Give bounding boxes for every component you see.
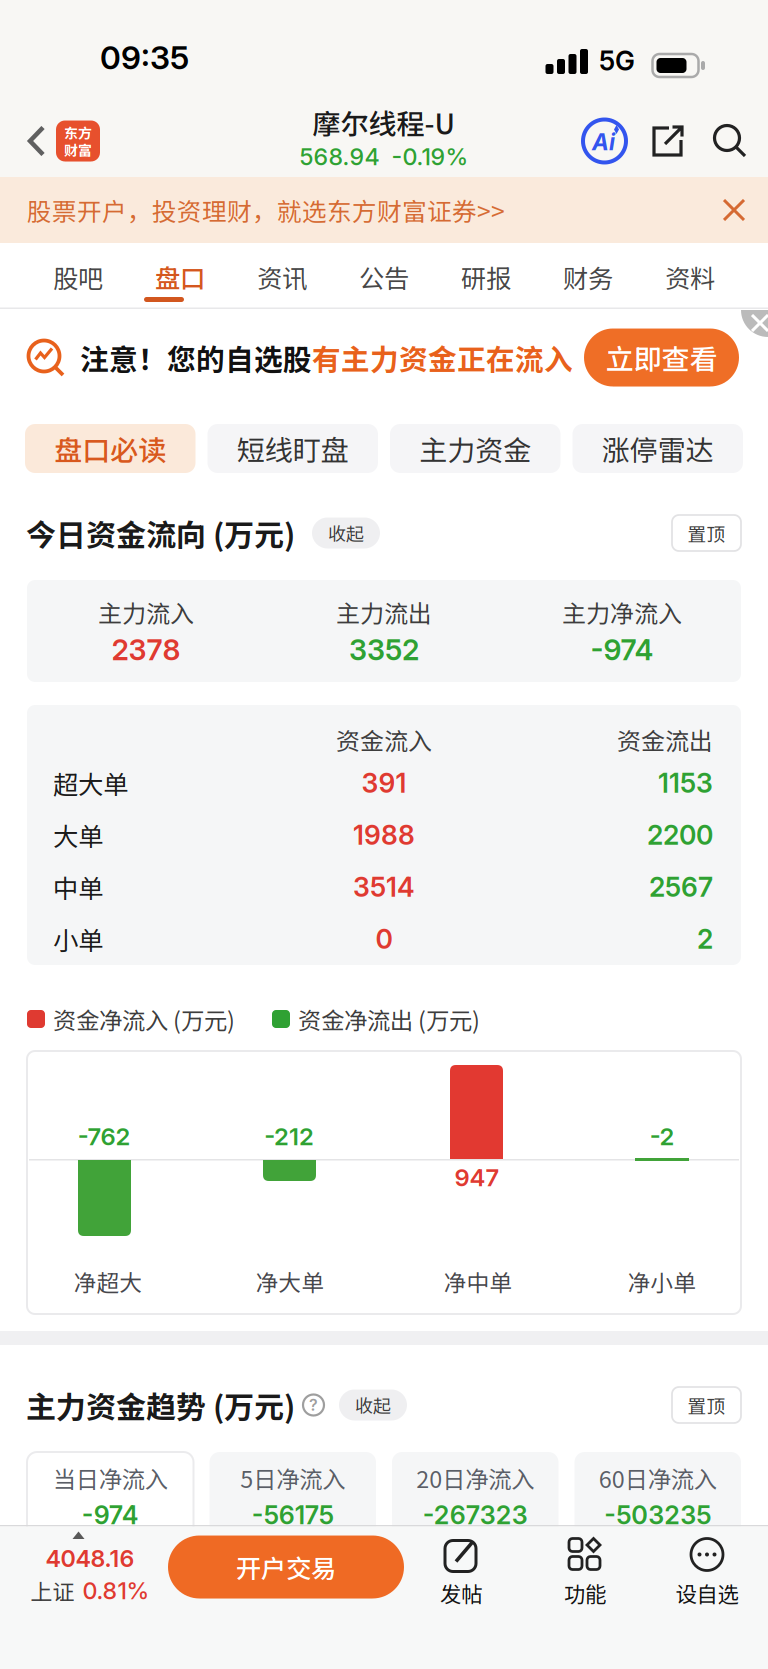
staticText: 股吧	[53, 259, 103, 295]
staticText: 置顶	[687, 1391, 725, 1418]
staticText: 净大单	[255, 1265, 324, 1298]
staticText: 2200	[647, 819, 713, 851]
staticText: 财务	[563, 259, 613, 295]
button[interactable]: 收起	[339, 1389, 407, 1420]
staticText: -212	[264, 1122, 314, 1151]
staticText: 947	[454, 1163, 499, 1192]
staticText: 收起	[328, 520, 364, 546]
button[interactable]: 收起	[312, 517, 380, 548]
staticText: 财富	[64, 139, 92, 160]
button[interactable]: 置顶	[672, 515, 741, 551]
button[interactable]: 主力资金	[390, 424, 560, 473]
staticText: 主力净流入	[562, 595, 682, 630]
staticText: 短线盯盘	[237, 428, 349, 469]
staticText: 20日净流入	[416, 1461, 534, 1495]
staticText: 资金流出	[617, 722, 713, 757]
staticText: 资讯	[257, 259, 307, 295]
button[interactable]: 5日净流入	[209, 1452, 376, 1552]
staticText: -2	[649, 1122, 674, 1151]
staticText: 2378	[111, 632, 180, 667]
staticText: ?	[309, 1395, 318, 1415]
staticText: 568.94 -0.19%	[299, 142, 468, 171]
button[interactable]: 立即查看	[584, 328, 739, 386]
staticText: 1153	[658, 767, 713, 799]
staticText: 主力资金	[419, 428, 531, 469]
staticText: 中单	[53, 869, 103, 905]
button[interactable]: 开户交易	[0, 1526, 236, 1589]
staticText: 资金流入	[336, 722, 432, 757]
staticText: 上证	[30, 1575, 74, 1607]
button[interactable]: 短线盯盘	[207, 424, 378, 473]
button[interactable]: 返回	[0, 124, 47, 157]
button[interactable]: 盘口必读	[25, 424, 195, 473]
staticText: 净小单	[627, 1265, 696, 1298]
button[interactable]: 股吧	[27, 259, 129, 295]
staticText: 主力流入	[98, 595, 194, 630]
staticText: 2	[697, 923, 713, 955]
button[interactable]: 涨停雷达	[572, 424, 743, 473]
button[interactable]: 当日净流入	[27, 1452, 193, 1552]
staticText: 0.81%	[82, 1576, 149, 1605]
staticText: 5G	[599, 45, 635, 77]
staticText: 功能	[564, 1577, 606, 1608]
staticText: 净中单	[443, 1265, 512, 1298]
staticText: -267323	[423, 1500, 528, 1530]
staticText: 2567	[649, 871, 713, 903]
button[interactable]: 盘口	[129, 259, 231, 295]
button[interactable]: 搜索	[687, 122, 749, 160]
staticText: 盘口必读	[54, 428, 166, 469]
staticText: 涨停雷达	[602, 428, 714, 469]
staticText: 有主力资金正在流入	[312, 337, 573, 378]
staticText: 净超大	[73, 1265, 142, 1298]
staticText: 5日净流入	[240, 1461, 345, 1495]
button[interactable]: 设自选	[0, 1526, 130, 1598]
button[interactable]: 20日净流入	[392, 1452, 558, 1552]
staticText: 收起	[355, 1392, 391, 1418]
button[interactable]: 财务	[537, 259, 639, 295]
staticText: 主力资金趋势 (万元)	[26, 1383, 295, 1427]
staticText: 0	[375, 923, 392, 955]
staticText: 60日净流入	[599, 1461, 717, 1495]
staticText: 盘口	[155, 259, 205, 295]
staticText: 资金净流出 (万元)	[298, 1002, 480, 1036]
button[interactable]: 股票开户，投资理财，就选东方财富证券>>	[0, 177, 768, 243]
button[interactable]: 东方财富	[47, 120, 100, 161]
staticText: 大单	[53, 817, 103, 853]
staticText: 资料	[665, 259, 715, 295]
staticText: -56175	[252, 1500, 334, 1530]
staticText: 今日资金流向 (万元)	[26, 511, 295, 555]
button[interactable]: 资料	[639, 259, 741, 295]
staticText: 3514	[353, 871, 415, 903]
staticText: 391	[361, 767, 406, 799]
button[interactable]: 60日净流入	[574, 1452, 741, 1552]
button[interactable]: 置顶	[672, 1387, 741, 1423]
staticText: 置顶	[687, 519, 725, 546]
staticText: 注意！您的自选股	[80, 337, 312, 378]
staticText: 摩尔线程-U	[312, 102, 455, 142]
staticText: 1988	[353, 819, 415, 851]
staticText: 当日净流入	[53, 1461, 168, 1495]
button[interactable]: 研报	[435, 259, 537, 295]
button[interactable]: 4048.16	[0, 1526, 168, 1589]
button[interactable]: 关闭横幅	[722, 198, 746, 222]
button[interactable]: 功能	[0, 1526, 130, 1598]
staticText: Ai	[592, 128, 615, 156]
button[interactable]: 分享	[628, 122, 687, 160]
staticText: 公告	[359, 259, 409, 295]
button[interactable]: 公告	[333, 259, 435, 295]
button[interactable]: 关闭提示	[712, 309, 768, 337]
staticText: -503235	[604, 1500, 711, 1530]
staticText: -974	[590, 632, 653, 667]
staticText: 股票开户，投资理财，就选东方财富证券>>	[27, 192, 505, 228]
staticText: 3352	[349, 632, 419, 667]
staticText: 09:35	[100, 38, 189, 77]
staticText: 立即查看	[605, 337, 717, 378]
button[interactable]: 发帖	[0, 1526, 130, 1598]
staticText: 研报	[461, 259, 511, 295]
staticText: -762	[77, 1122, 130, 1151]
button[interactable]: Ai助手	[581, 117, 628, 164]
staticText: -974	[82, 1500, 139, 1530]
staticText: 设自选	[675, 1577, 738, 1608]
button[interactable]: 资讯	[231, 259, 333, 295]
staticText: 小单	[53, 921, 103, 957]
